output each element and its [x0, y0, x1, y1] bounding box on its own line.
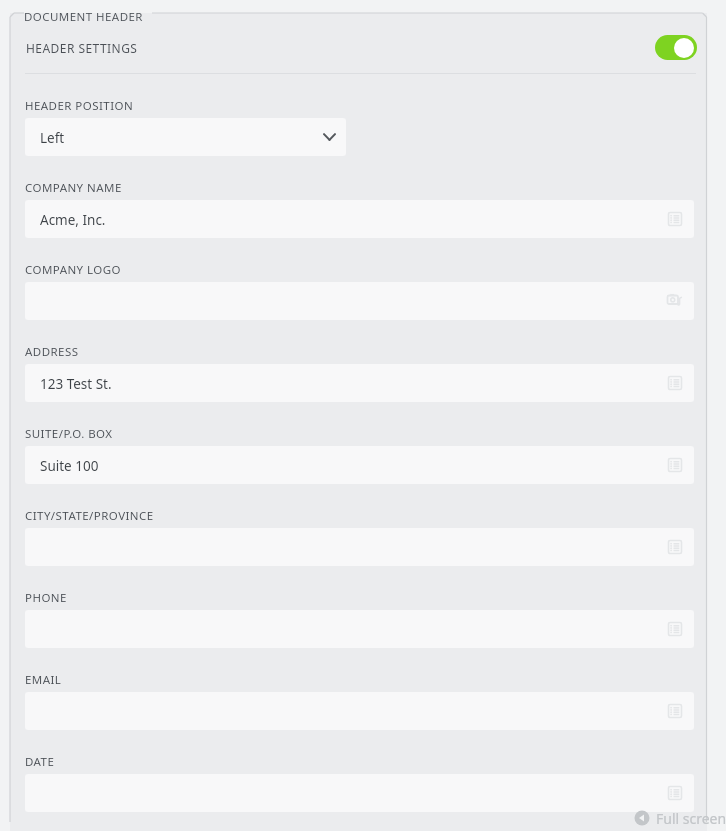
staticText: Acme, Inc. — [40, 211, 106, 229]
button[interactable]: Header position, Left — [25, 118, 346, 156]
button[interactable]: COMPANY NAME — [25, 200, 694, 238]
staticText: DOCUMENT HEADER — [24, 9, 143, 25]
staticText: Full screen — [656, 809, 726, 828]
button[interactable]: ADDRESS — [25, 364, 694, 402]
staticText: COMPANY NAME — [25, 180, 122, 196]
staticText: HEADER SETTINGS — [26, 40, 138, 56]
button[interactable]: HEADER SETTINGS — [11, 28, 706, 68]
staticText: HEADER POSITION — [25, 98, 134, 114]
button[interactable]: SUITE/P.O. BOX — [25, 446, 694, 484]
button[interactable]: Full screen — [634, 806, 726, 830]
staticText: COMPANY LOGO — [25, 262, 121, 278]
staticText: 123 Test St. — [40, 375, 112, 393]
staticText: PHONE — [25, 590, 67, 606]
staticText: Suite 100 — [40, 457, 99, 475]
staticText: DATE — [25, 754, 55, 770]
staticText: Left — [40, 129, 65, 147]
button[interactable]: Header settings toggle, on — [655, 35, 697, 60]
staticText: CITY/STATE/PROVINCE — [25, 508, 154, 524]
staticText: EMAIL — [25, 672, 62, 688]
staticText: SUITE/P.O. BOX — [25, 426, 113, 442]
staticText: ADDRESS — [25, 344, 79, 360]
